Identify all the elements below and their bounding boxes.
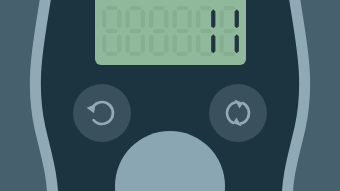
button[interactable]: Reset counter — [209, 84, 267, 142]
button[interactable]: Increment count — [115, 131, 225, 191]
button[interactable]: Undo last count — [73, 84, 131, 142]
